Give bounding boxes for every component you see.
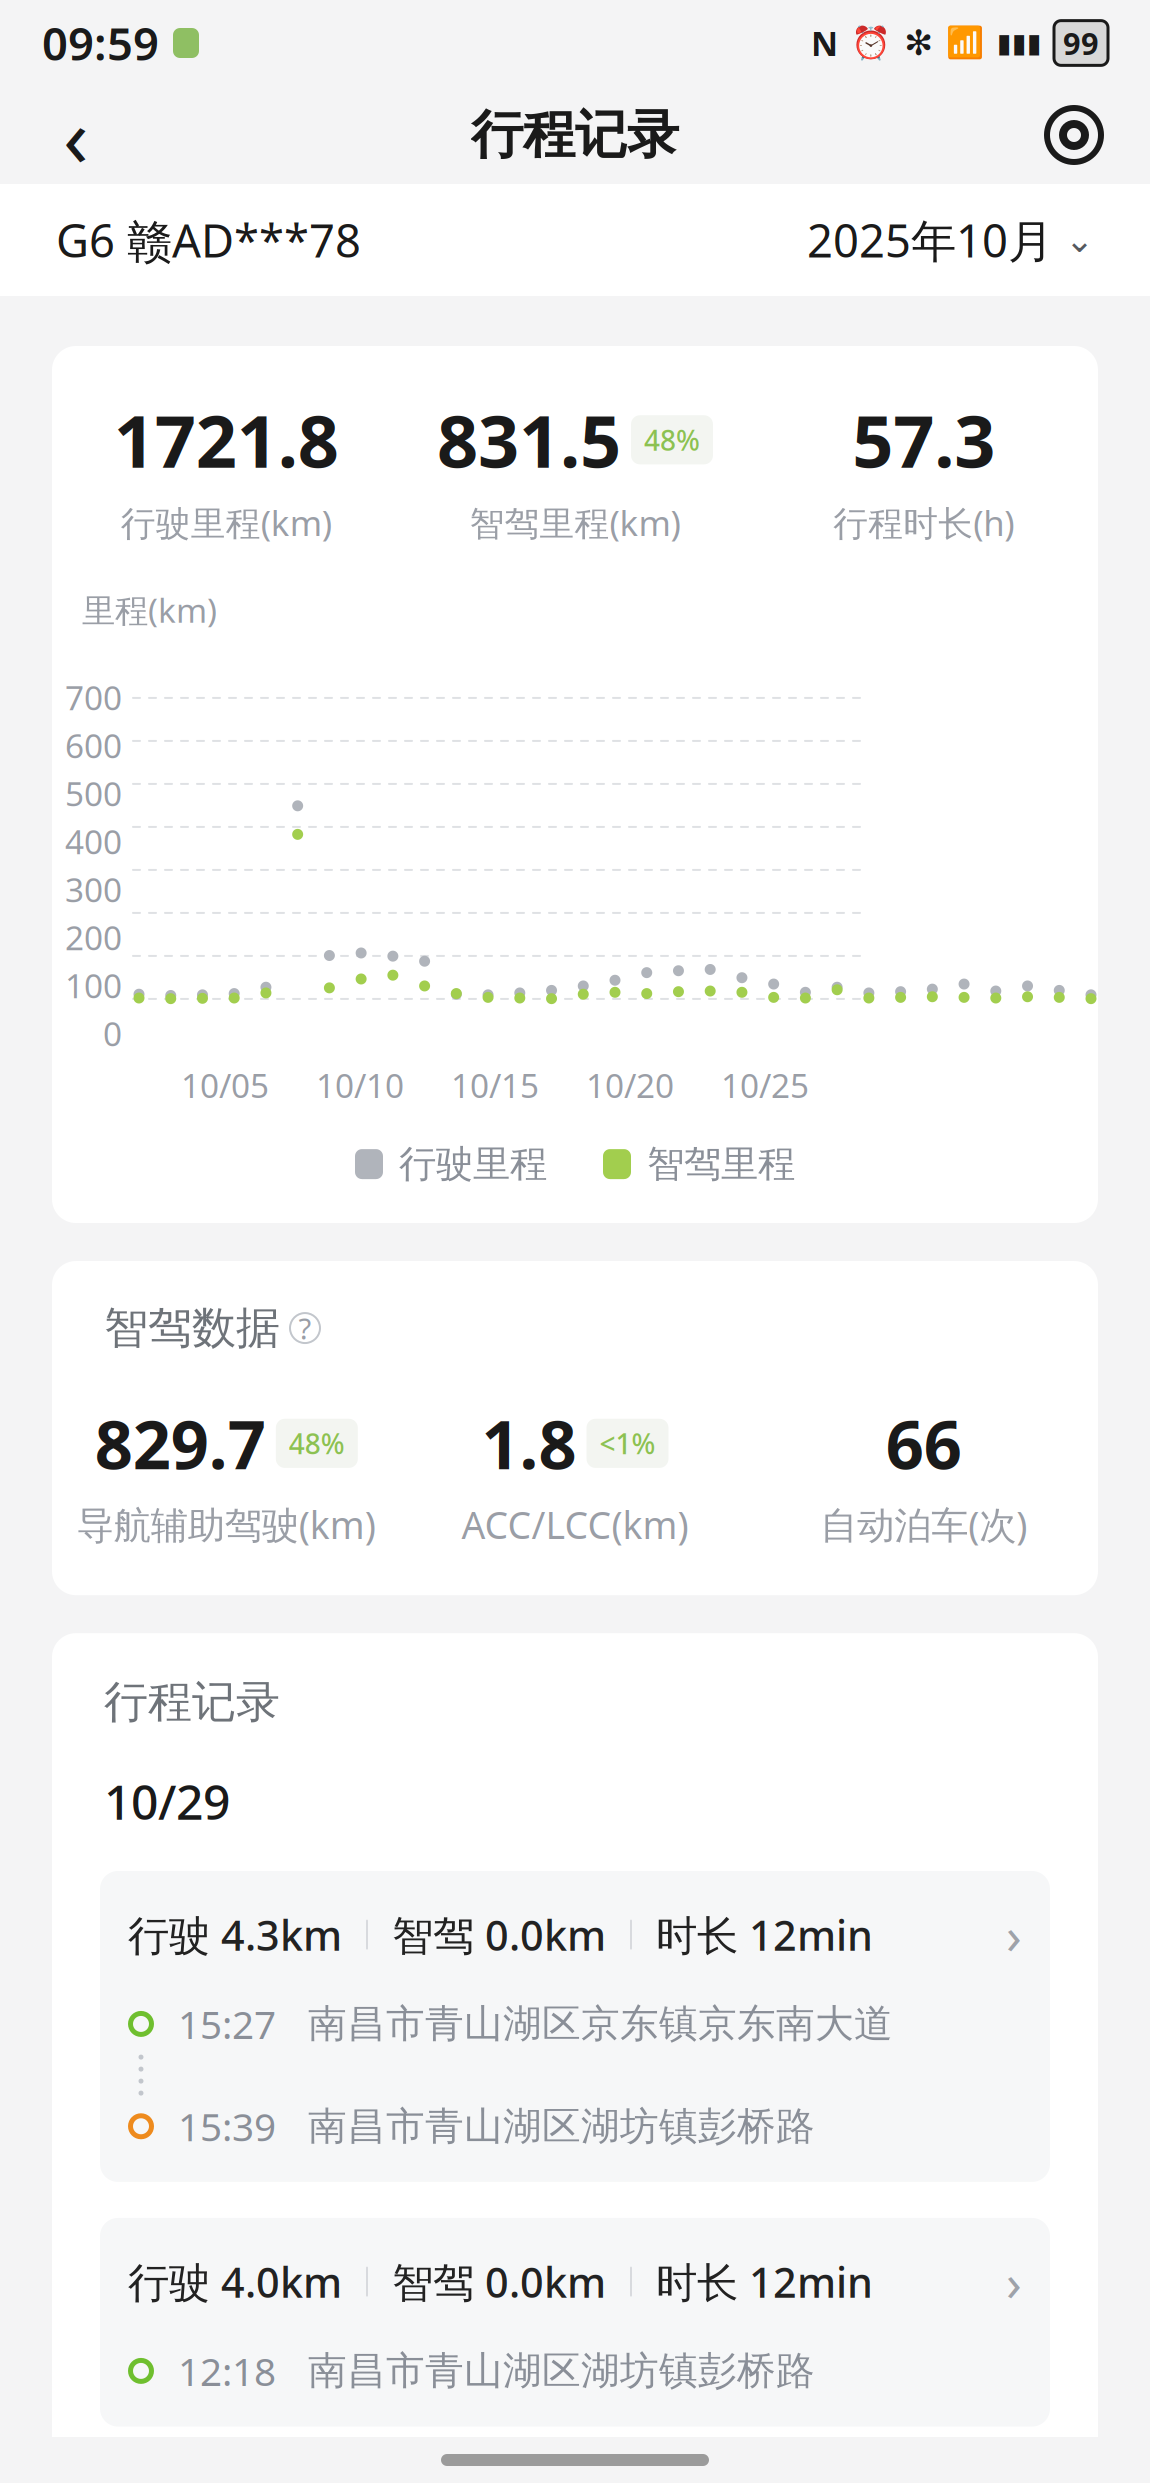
staticText: ⏰ <box>851 25 891 61</box>
staticText: 700 <box>65 675 122 720</box>
staticText: 行程时长(h) <box>833 500 1014 546</box>
staticText: 自动泊车(次) <box>820 1500 1027 1549</box>
staticText: 100 <box>65 963 122 1008</box>
staticText: ▮▮▮ <box>997 28 1042 58</box>
staticText: 48% <box>644 421 700 458</box>
staticText: ✻ <box>904 23 933 63</box>
staticText: 行驶里程 <box>399 1141 547 1187</box>
staticText: 10/05 <box>181 1063 269 1107</box>
staticText: 行驶 4.0km <box>128 2254 342 2309</box>
staticText: <1% <box>599 1425 655 1462</box>
staticText: 里程(km) <box>82 588 217 632</box>
staticText: ACC/LCC(km) <box>461 1500 688 1549</box>
staticText: 0 <box>103 1011 122 1056</box>
staticText: ? <box>298 1309 311 1348</box>
button[interactable]: 返回 <box>36 95 116 175</box>
staticText: 行程记录 <box>471 103 679 167</box>
staticText: 66 <box>886 1399 962 1488</box>
staticText: 南昌市青山湖区京东镇京东南大道 <box>308 2000 893 2048</box>
staticText: 智驾 0.0km <box>392 2254 606 2309</box>
button[interactable]: 设置 <box>1034 95 1114 175</box>
button[interactable]: 行驶 4.3km <box>100 1871 1050 2182</box>
staticText: 1.8 <box>481 1399 576 1488</box>
staticText: 48% <box>289 1425 345 1462</box>
staticText: 10/20 <box>586 1063 674 1107</box>
staticText: N <box>811 21 838 65</box>
staticText: 南昌市青山湖区湖坊镇彭桥路 <box>308 2347 815 2395</box>
staticText: 15:27 <box>178 1998 276 2050</box>
staticText: 600 <box>65 723 122 768</box>
staticText: 智驾 0.0km <box>392 1907 606 1962</box>
staticText: 📶 <box>946 25 984 60</box>
button[interactable]: 2025年10月 <box>807 210 1094 270</box>
staticText: 10/10 <box>316 1063 404 1107</box>
staticText: 15:39 <box>178 2101 276 2152</box>
staticText: 行程记录 <box>104 1675 280 1729</box>
staticText: 10/25 <box>721 1063 809 1107</box>
staticText: ‹ <box>63 80 89 190</box>
staticText: 829.7 <box>95 1399 266 1488</box>
staticText: › <box>1006 2248 1022 2315</box>
staticText: 智驾里程 <box>647 1141 795 1187</box>
staticText: 200 <box>65 915 122 960</box>
staticText: 57.3 <box>852 392 995 488</box>
staticText: G6 赣AD***78 <box>56 210 361 270</box>
staticText: 400 <box>65 819 122 864</box>
button[interactable]: 智驾数据说明 <box>290 1313 320 1343</box>
staticText: 行驶里程(km) <box>121 500 332 546</box>
staticText: 500 <box>65 771 122 816</box>
staticText: 智驾里程(km) <box>469 500 680 546</box>
staticText: 1721.8 <box>114 392 339 488</box>
staticText: 时长 12min <box>656 1907 873 1962</box>
staticText: 300 <box>65 867 122 912</box>
staticText: 2025年10月 <box>807 210 1053 270</box>
staticText: 行驶 4.3km <box>128 1907 342 1962</box>
staticText: 99 <box>1063 23 1099 63</box>
staticText: › <box>1006 1901 1022 1968</box>
staticText: 09:59 <box>42 13 159 73</box>
staticText: ⌄ <box>1065 220 1094 260</box>
staticText: 10/29 <box>104 1769 230 1833</box>
staticText: 导航辅助驾驶(km) <box>77 1500 376 1549</box>
staticText: 时长 12min <box>656 2254 873 2309</box>
staticText: 12:18 <box>178 2345 276 2396</box>
staticText: 南昌市青山湖区湖坊镇彭桥路 <box>308 2102 815 2150</box>
staticText: 10/15 <box>451 1063 539 1107</box>
staticText: 831.5 <box>437 392 621 488</box>
staticText: 智驾数据 <box>104 1301 280 1355</box>
button[interactable]: 行驶 4.0km <box>100 2218 1050 2427</box>
